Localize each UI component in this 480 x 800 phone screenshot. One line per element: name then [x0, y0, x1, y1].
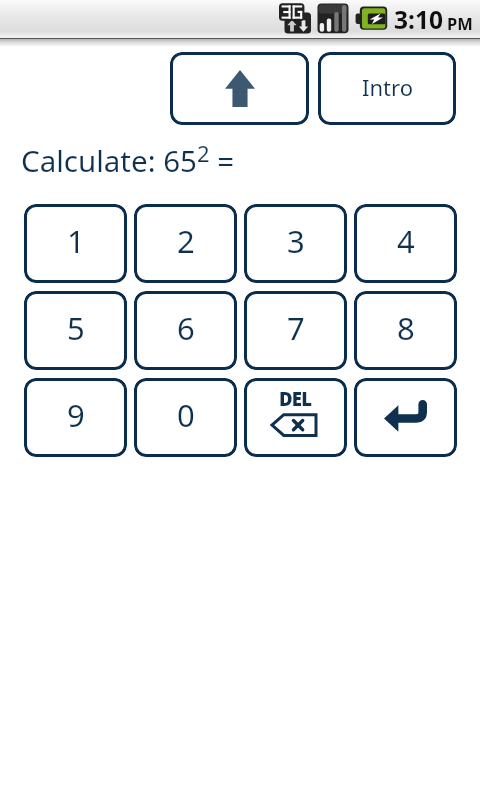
- staticText: 1: [67, 220, 85, 262]
- button[interactable]: Intro: [318, 52, 456, 125]
- staticText: 3: [287, 220, 305, 262]
- button[interactable]: 7: [244, 291, 347, 370]
- staticText: PM: [447, 12, 473, 34]
- staticText: 5: [67, 307, 85, 349]
- staticText: 4: [397, 220, 415, 262]
- staticText: 6: [177, 307, 195, 349]
- button[interactable]: 9: [24, 378, 127, 457]
- button[interactable]: 4: [354, 204, 457, 283]
- button[interactable]: Enter: [354, 378, 457, 457]
- button[interactable]: 3: [244, 204, 347, 283]
- button[interactable]: 2: [134, 204, 237, 283]
- button[interactable]: 8: [354, 291, 457, 370]
- staticText: Intro: [362, 72, 413, 102]
- staticText: 7: [287, 307, 305, 349]
- staticText: Calculate: 652 =: [21, 138, 235, 181]
- staticText: 8: [397, 307, 415, 349]
- button[interactable]: 1: [24, 204, 127, 283]
- staticText: 9: [67, 394, 85, 436]
- button[interactable]: 5: [24, 291, 127, 370]
- staticText: 3:10: [394, 3, 443, 36]
- staticText: 2: [177, 220, 195, 262]
- button[interactable]: Delete: [244, 378, 347, 457]
- staticText: DEL: [279, 386, 312, 411]
- button[interactable]: Up: [170, 52, 309, 125]
- button[interactable]: 0: [134, 378, 237, 457]
- staticText: 0: [177, 394, 195, 436]
- button[interactable]: 6: [134, 291, 237, 370]
